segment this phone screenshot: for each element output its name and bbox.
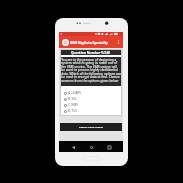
staticText: C. KMS [68,103,79,107]
button[interactable]: Recents [105,143,113,151]
button[interactable]: More options [115,39,121,45]
staticText: A. LDAPS [68,91,81,95]
button[interactable]: B. SSL [64,96,122,102]
staticText: AWS BigData Specialty [70,40,108,45]
button[interactable]: SUBMIT YOUR CHOICE [60,123,122,131]
staticText: Question Number 9/240 [71,50,111,54]
button[interactable]: Back [69,143,77,151]
button[interactable]: C. KMS [64,102,122,108]
staticText: D. TLS [68,109,77,113]
staticText: B. SSL [68,97,77,101]
button[interactable]: Home [87,143,95,151]
button[interactable]: D. TLS [64,108,122,114]
button[interactable]: AWS BigData Specialty [59,36,123,48]
button[interactable]: A. LDAPS [64,90,122,96]
staticText: SUBMIT YOUR CHOICE [79,126,104,129]
